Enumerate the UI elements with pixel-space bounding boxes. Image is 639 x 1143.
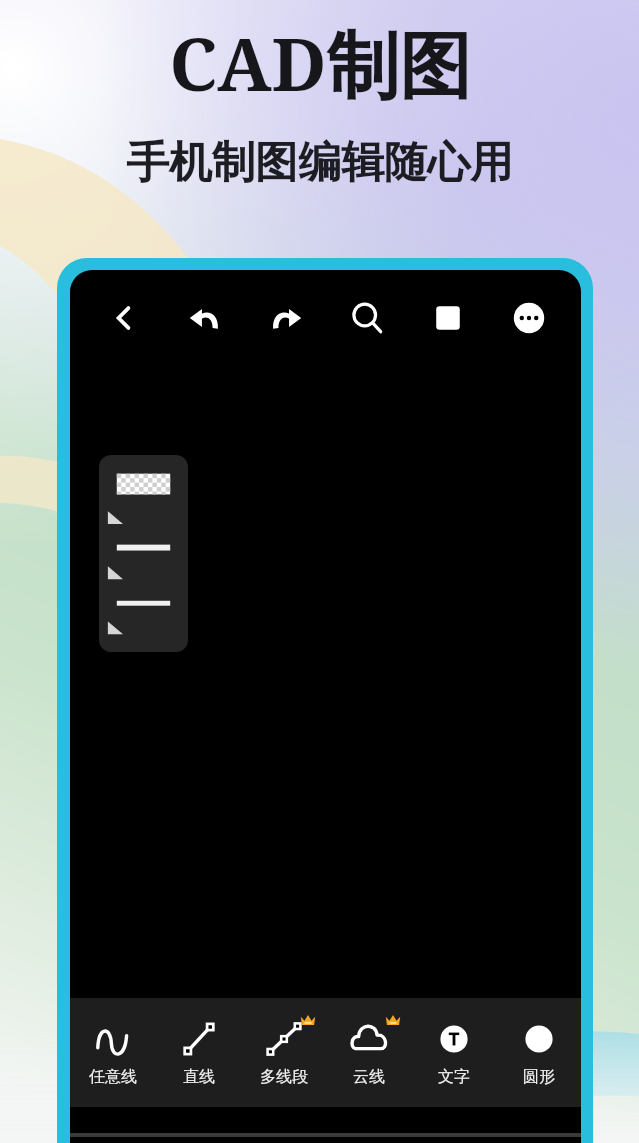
- staticText: CAD制图: [169, 14, 471, 112]
- button[interactable]: Search: [326, 270, 407, 366]
- button[interactable]: 文字: [411, 998, 496, 1107]
- button[interactable]: Redo: [245, 270, 326, 366]
- button[interactable]: 圆形: [496, 998, 581, 1107]
- staticText: 文字: [438, 1067, 470, 1087]
- button[interactable]: Back: [82, 270, 164, 366]
- staticText: 多线段: [260, 1067, 308, 1087]
- button[interactable]: Undo: [164, 270, 245, 366]
- staticText: 手机制图编辑随心用: [126, 136, 513, 190]
- button[interactable]: 任意线: [70, 998, 156, 1107]
- staticText: 任意线: [89, 1067, 137, 1087]
- staticText: 云线: [353, 1067, 385, 1087]
- staticText: 直线: [183, 1067, 215, 1087]
- button[interactable]: Layer styles: [99, 455, 188, 652]
- button[interactable]: 直线: [156, 998, 241, 1107]
- button[interactable]: Shape: [407, 270, 488, 366]
- button[interactable]: 云线: [326, 998, 411, 1107]
- button[interactable]: More options: [488, 270, 569, 366]
- button[interactable]: 多线段: [241, 998, 326, 1107]
- staticText: 圆形: [523, 1067, 555, 1087]
